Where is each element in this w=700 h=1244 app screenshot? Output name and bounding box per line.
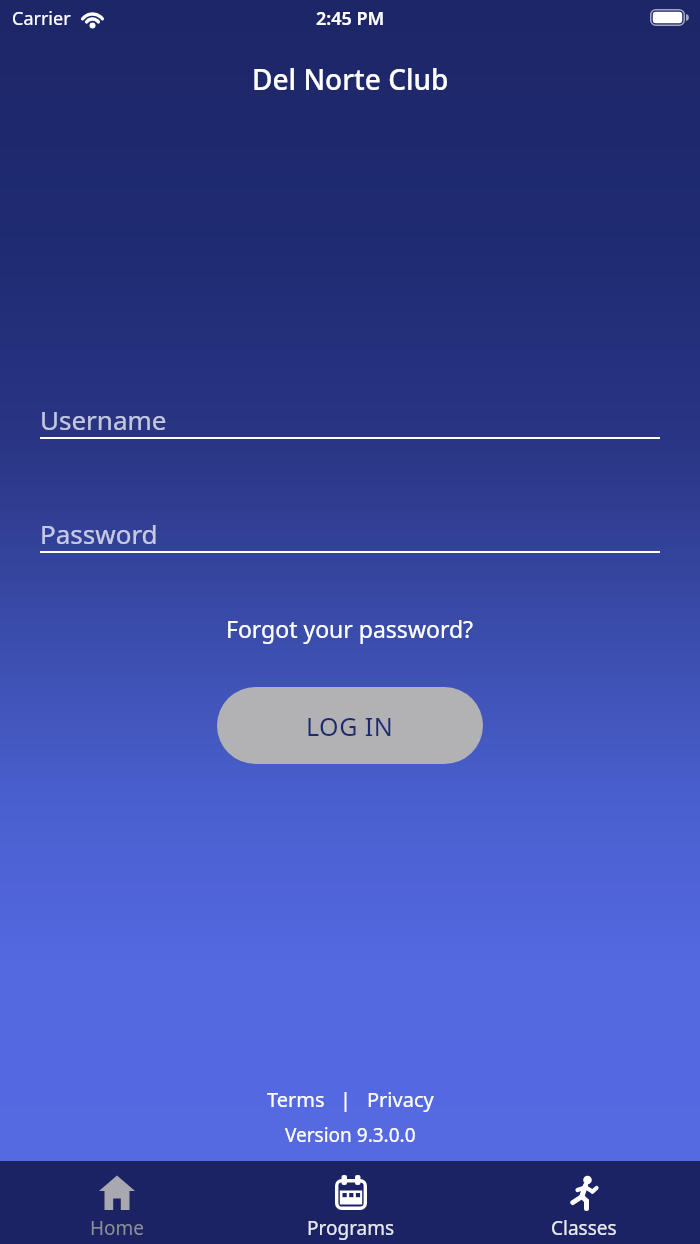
- staticText: LOG IN: [306, 709, 394, 743]
- staticText: 2:45 PM: [316, 6, 385, 31]
- button[interactable]: Password: [40, 516, 660, 552]
- button[interactable]: Programs: [234, 1161, 467, 1241]
- staticText: |: [340, 1086, 352, 1113]
- staticText: Classes: [551, 1215, 617, 1241]
- staticText: Carrier: [12, 6, 71, 31]
- button[interactable]: Forgot your password?: [226, 613, 474, 644]
- staticText: Terms: [267, 1086, 325, 1113]
- staticText: Home: [90, 1215, 145, 1241]
- button[interactable]: LOG IN: [217, 687, 483, 764]
- staticText: Version 9.3.0.0: [285, 1122, 416, 1148]
- button[interactable]: Username: [40, 402, 660, 438]
- button[interactable]: Terms: [267, 1086, 325, 1113]
- staticText: Del Norte Club: [252, 60, 449, 98]
- staticText: Username: [40, 402, 167, 437]
- staticText: Forgot your password?: [226, 613, 474, 644]
- button[interactable]: Privacy: [367, 1086, 434, 1113]
- button[interactable]: Home: [0, 1161, 234, 1241]
- button[interactable]: Classes: [467, 1161, 700, 1241]
- staticText: Programs: [307, 1215, 395, 1241]
- staticText: Password: [40, 516, 158, 551]
- staticText: Privacy: [367, 1086, 434, 1113]
